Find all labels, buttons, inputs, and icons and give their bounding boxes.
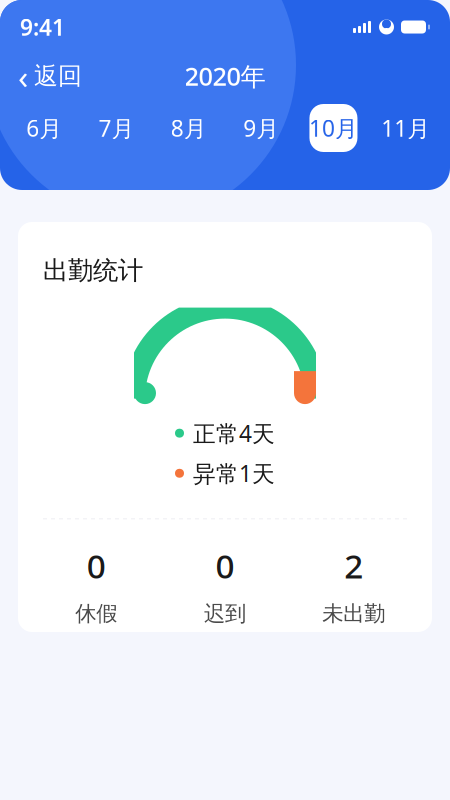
staticText: 出勤统计 bbox=[43, 255, 143, 286]
staticText: 2 bbox=[344, 543, 363, 588]
staticText: 9月 bbox=[243, 113, 279, 143]
staticText: 7月 bbox=[98, 113, 134, 143]
staticText: 迟到 bbox=[204, 601, 246, 627]
staticText: 6月 bbox=[26, 113, 62, 143]
staticText: 0 bbox=[87, 543, 106, 588]
staticText: 返回 bbox=[34, 61, 82, 91]
staticText: 0 bbox=[215, 543, 234, 588]
staticText: 正常4天 bbox=[193, 418, 275, 448]
staticText: 8月 bbox=[171, 113, 207, 143]
button[interactable]: 10月 bbox=[297, 98, 370, 158]
button[interactable]: 6月 bbox=[8, 98, 80, 158]
staticText: 休假 bbox=[75, 601, 117, 627]
staticText: 异常1天 bbox=[193, 458, 275, 488]
button[interactable]: ‹ bbox=[0, 54, 96, 98]
staticText: 11月 bbox=[381, 113, 430, 143]
staticText: 10月 bbox=[309, 113, 358, 143]
staticText: 9:41 bbox=[20, 12, 65, 42]
button[interactable]: 7月 bbox=[80, 98, 153, 158]
staticText: ‹ bbox=[18, 54, 28, 98]
button[interactable]: 9月 bbox=[225, 98, 297, 158]
button[interactable]: 11月 bbox=[370, 98, 442, 158]
button[interactable]: 8月 bbox=[153, 98, 225, 158]
staticText: 未出勤 bbox=[322, 601, 385, 627]
staticText: 2020年 bbox=[184, 59, 265, 93]
